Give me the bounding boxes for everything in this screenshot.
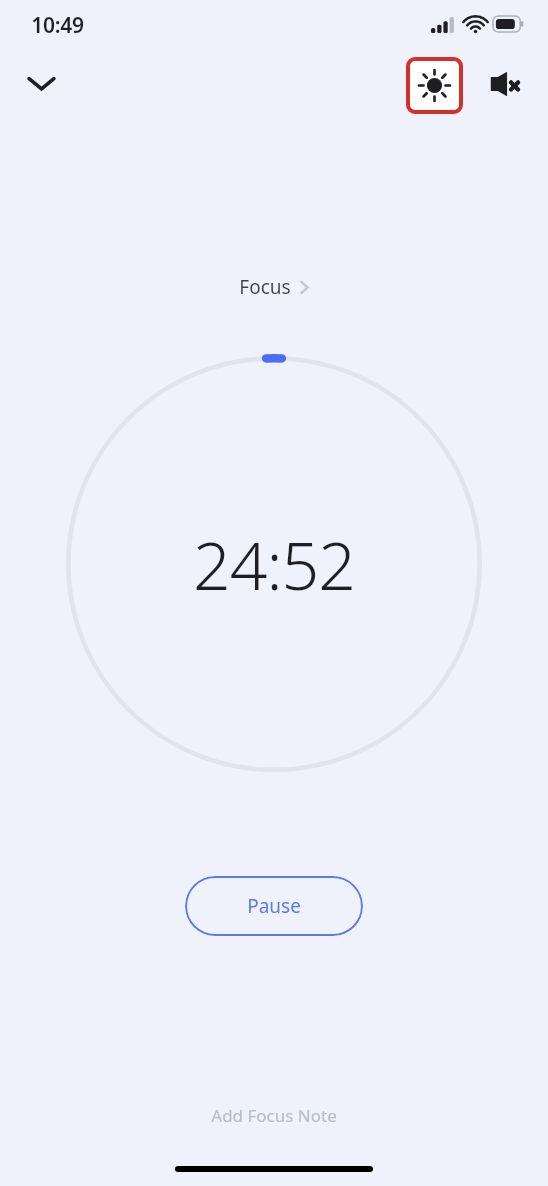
button[interactable]: Focus (231, 271, 317, 303)
staticText: Add Focus Note (211, 1104, 337, 1127)
staticText: 10:49 (31, 11, 84, 40)
staticText: Focus (239, 274, 291, 300)
button[interactable]: Add Focus Note (197, 1098, 351, 1133)
button[interactable]: Collapse (16, 58, 66, 108)
staticText: 24:52 (193, 519, 355, 609)
button[interactable]: Mute (479, 58, 531, 110)
staticText: Pause (247, 893, 301, 919)
button[interactable]: Brightness (406, 57, 463, 114)
button[interactable]: Pause (185, 876, 363, 936)
